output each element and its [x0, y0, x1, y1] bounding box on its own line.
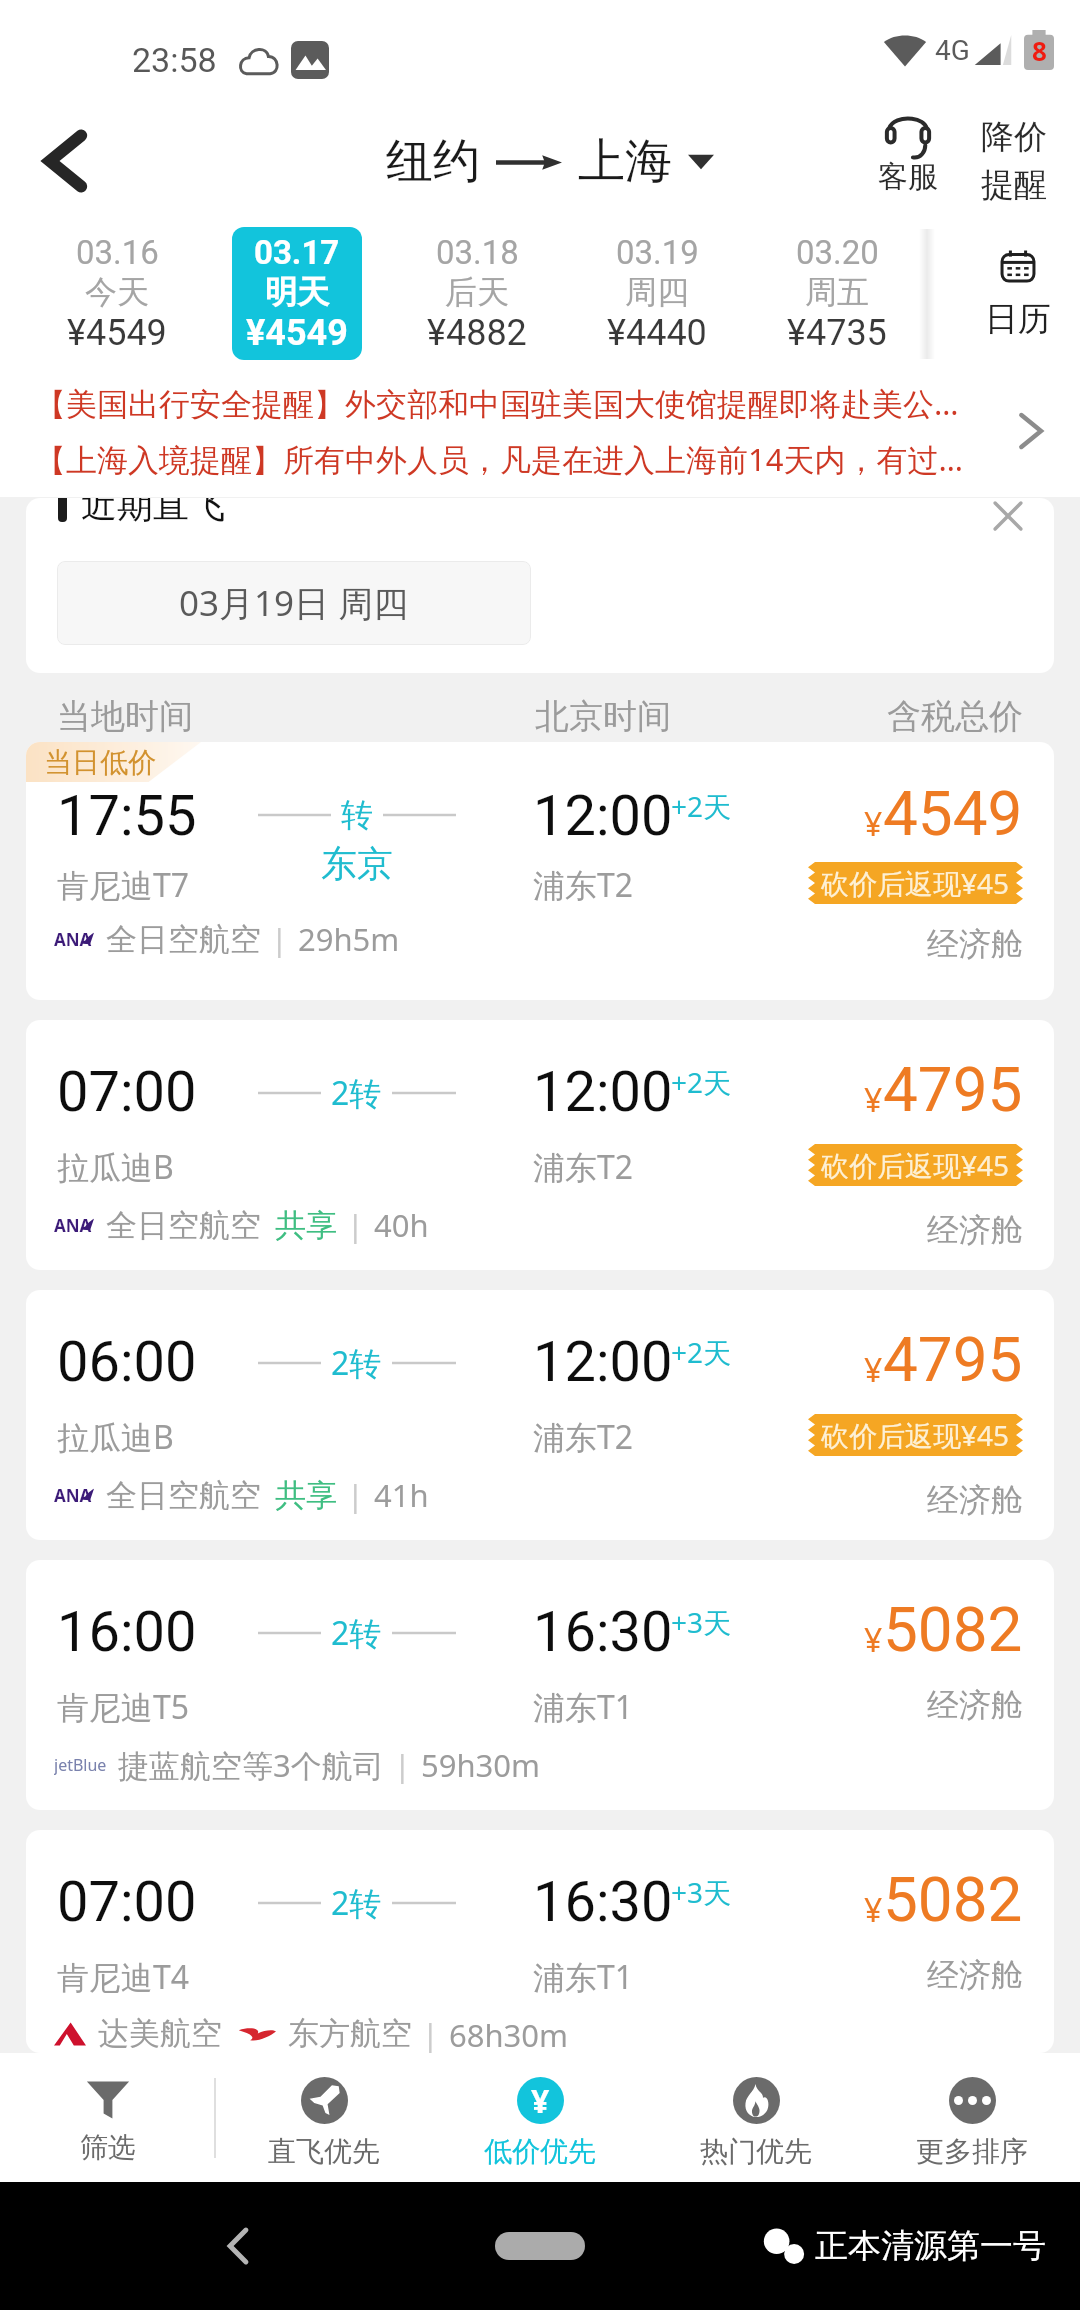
staticText: 降价 [981, 116, 1047, 158]
staticText: 12:00 [533, 1059, 673, 1125]
staticText: 06:00 [57, 1329, 197, 1395]
staticText: 59h30m [421, 1744, 541, 1786]
staticText: 12:00 [533, 1329, 673, 1395]
staticText: 经济舱 [927, 1685, 1023, 1725]
staticText: 03月19日 周四 [179, 579, 409, 627]
staticText: 浦东T1 [533, 1955, 634, 1999]
button[interactable]: 07:00 [26, 1020, 1054, 1270]
staticText: ¥ [864, 1888, 883, 1932]
staticText: 共享 [275, 1206, 337, 1245]
staticText: ¥4549 [246, 312, 348, 354]
staticText: 筛选 [80, 2130, 136, 2165]
staticText: 提醒 [981, 164, 1047, 206]
button[interactable]: 16:00 [26, 1560, 1054, 1810]
staticText: 正本清源第一号 [815, 2225, 1046, 2267]
staticText: 17:55 [57, 783, 197, 849]
button[interactable]: 【美国出行安全提醒】外交部和中国驻美国大使馆提醒即将赴美公… [0, 365, 1080, 497]
staticText: 肯尼迪T5 [57, 1685, 190, 1729]
button[interactable]: 直飞优先 [216, 2053, 432, 2182]
staticText: 经济舱 [927, 1480, 1023, 1520]
staticText: ¥4882 [427, 312, 527, 354]
button[interactable]: 更多排序 [864, 2053, 1080, 2182]
button[interactable]: 07:00 [26, 1830, 1054, 2053]
staticText: 全日空航空 [106, 920, 261, 959]
staticText: 更多排序 [916, 2134, 1028, 2169]
staticText: | [394, 1745, 411, 1786]
staticText: 07:00 [57, 1059, 197, 1125]
staticText: ¥4735 [787, 312, 887, 354]
staticText: 经济舱 [927, 1210, 1023, 1250]
staticText: 03.20 [796, 233, 879, 272]
staticText: 29h5m [298, 918, 400, 960]
staticText: 明天 [265, 272, 329, 312]
button[interactable]: Home [495, 2232, 585, 2260]
staticText: | [422, 2014, 439, 2053]
button[interactable]: 03月19日 周四 [57, 561, 531, 645]
staticText: 4549 [883, 777, 1023, 850]
button[interactable]: 03.16 [52, 227, 182, 360]
staticText: 近期直飞 [81, 498, 225, 527]
staticText: ANA [54, 1214, 92, 1237]
button[interactable]: ¥ [432, 2053, 648, 2182]
button[interactable]: 热门优先 [648, 2053, 864, 2182]
staticText: 5082 [883, 1593, 1023, 1666]
button[interactable]: 03.19 [592, 227, 722, 360]
button[interactable]: 03.17 [232, 227, 362, 360]
staticText: +2天 [671, 1063, 732, 1101]
staticText: ¥ [864, 802, 883, 846]
button[interactable]: 06:00 [26, 1290, 1054, 1540]
staticText: 16:30 [533, 1599, 673, 1665]
staticText: 日历 [985, 298, 1051, 340]
button[interactable]: 降价 [964, 116, 1064, 206]
staticText: +2天 [671, 1333, 732, 1371]
button[interactable]: 03.18 [412, 227, 542, 360]
staticText: 03.16 [76, 233, 159, 272]
staticText: | [347, 1205, 364, 1246]
staticText: ¥4440 [607, 312, 707, 354]
staticText: 浦东T1 [533, 1685, 634, 1729]
staticText: 砍价后返现¥45 [821, 1146, 1010, 1184]
staticText: 16:00 [57, 1599, 197, 1665]
staticText: 2转 [331, 1611, 382, 1655]
staticText: 40h [374, 1204, 429, 1246]
button[interactable]: 日历 [927, 222, 1080, 365]
staticText: 低价优先 [484, 2134, 596, 2169]
staticText: 23:58 [132, 40, 217, 80]
staticText: ¥4549 [67, 312, 167, 354]
staticText: ¥ [864, 1618, 883, 1662]
staticText: 4G [935, 34, 970, 67]
staticText: 肯尼迪T4 [57, 1955, 190, 1999]
button[interactable]: 客服 [858, 116, 958, 196]
button[interactable]: 03.20 [772, 227, 902, 360]
staticText: 浦东T2 [533, 863, 634, 907]
staticText: 肯尼迪T7 [57, 863, 190, 907]
staticText: 2转 [331, 1341, 382, 1385]
staticText: 纽约 [386, 132, 480, 191]
staticText: 含税总价 [887, 695, 1023, 738]
staticText: 全日空航空 [106, 1476, 261, 1515]
staticText: 砍价后返现¥45 [821, 864, 1010, 902]
button[interactable]: 筛选 [0, 2053, 216, 2182]
staticText: 当地时间 [57, 695, 193, 738]
staticText: 【美国出行安全提醒】外交部和中国驻美国大使馆提醒即将赴美公… [35, 382, 959, 424]
staticText: 【上海入境提醒】所有中外人员，凡是在进入上海前14天内，有过… [35, 438, 963, 480]
staticText: 周五 [805, 272, 869, 312]
staticText: 03.19 [616, 233, 699, 272]
staticText: 4795 [883, 1323, 1023, 1396]
staticText: 07:00 [57, 1869, 197, 1935]
staticText: 上海 [578, 132, 672, 191]
button[interactable]: 当日低价 [26, 742, 1054, 1000]
staticText: 5082 [883, 1863, 1023, 1936]
staticText: 今天 [85, 272, 149, 312]
button[interactable]: Back [206, 2214, 270, 2278]
staticText: 拉瓜迪B [57, 1145, 174, 1189]
staticText: 8 [1032, 33, 1047, 68]
button[interactable]: 纽约 [386, 132, 714, 191]
staticText: +2天 [671, 787, 732, 825]
button[interactable]: Back [0, 100, 130, 222]
staticText: 直飞优先 [268, 2134, 380, 2169]
button[interactable]: Close [976, 498, 1040, 562]
staticText: 后天 [445, 272, 509, 312]
staticText: 北京时间 [535, 695, 671, 738]
staticText: ANA [54, 1484, 92, 1507]
